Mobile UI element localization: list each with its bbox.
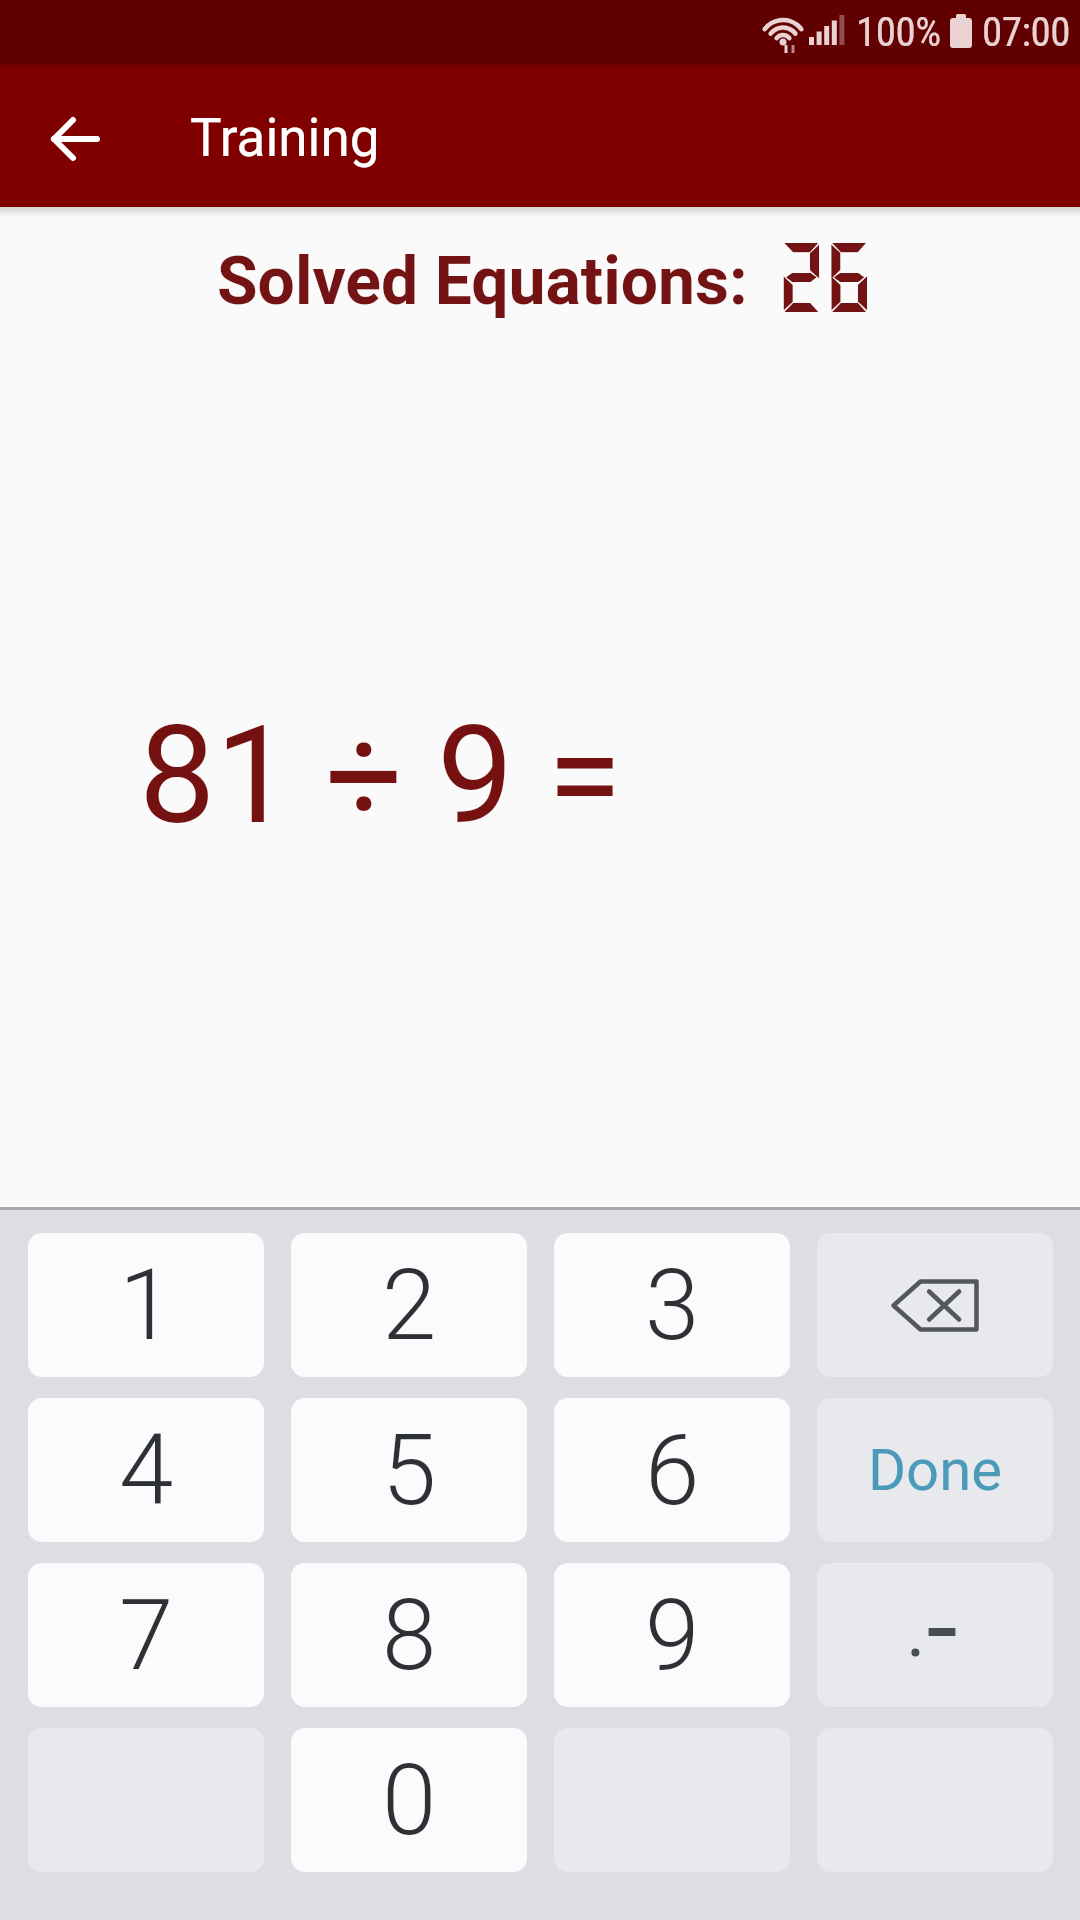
staticText: 7 [119, 1578, 174, 1693]
staticText: 100% [856, 8, 941, 56]
staticText: 1 [119, 1248, 174, 1363]
button[interactable]: 5 [291, 1398, 527, 1542]
button[interactable]: 7 [28, 1563, 264, 1707]
staticText: 6 [645, 1413, 700, 1528]
button[interactable]: Done [817, 1398, 1053, 1542]
button[interactable]: 6 [554, 1398, 790, 1542]
button[interactable]: 9 [554, 1563, 790, 1707]
button[interactable]: 8 [291, 1563, 527, 1707]
staticText: 81 ÷ 9 = [139, 696, 622, 855]
staticText: 07:00 [982, 8, 1071, 56]
button[interactable]: 3 [554, 1233, 790, 1377]
staticText: 2 [382, 1248, 437, 1363]
staticText: 4 [119, 1413, 174, 1528]
staticText: 26 [775, 233, 871, 318]
staticText: 5 [382, 1413, 437, 1528]
button[interactable]: 2 [291, 1233, 527, 1377]
button[interactable]: 1 [28, 1233, 264, 1377]
staticText: 8 [382, 1578, 437, 1693]
staticText: 0 [382, 1743, 437, 1858]
button[interactable]: 0 [291, 1728, 527, 1872]
staticText: 26 [775, 233, 871, 318]
button[interactable] [30, 93, 122, 185]
staticText: 3 [645, 1248, 700, 1363]
button[interactable] [817, 1233, 1053, 1377]
button[interactable] [817, 1563, 1053, 1707]
button[interactable]: 4 [28, 1398, 264, 1542]
staticText: 9 [645, 1578, 700, 1693]
staticText: Solved Equations: [217, 243, 748, 320]
staticText: Done [868, 1436, 1002, 1504]
staticText: Training [190, 107, 380, 169]
